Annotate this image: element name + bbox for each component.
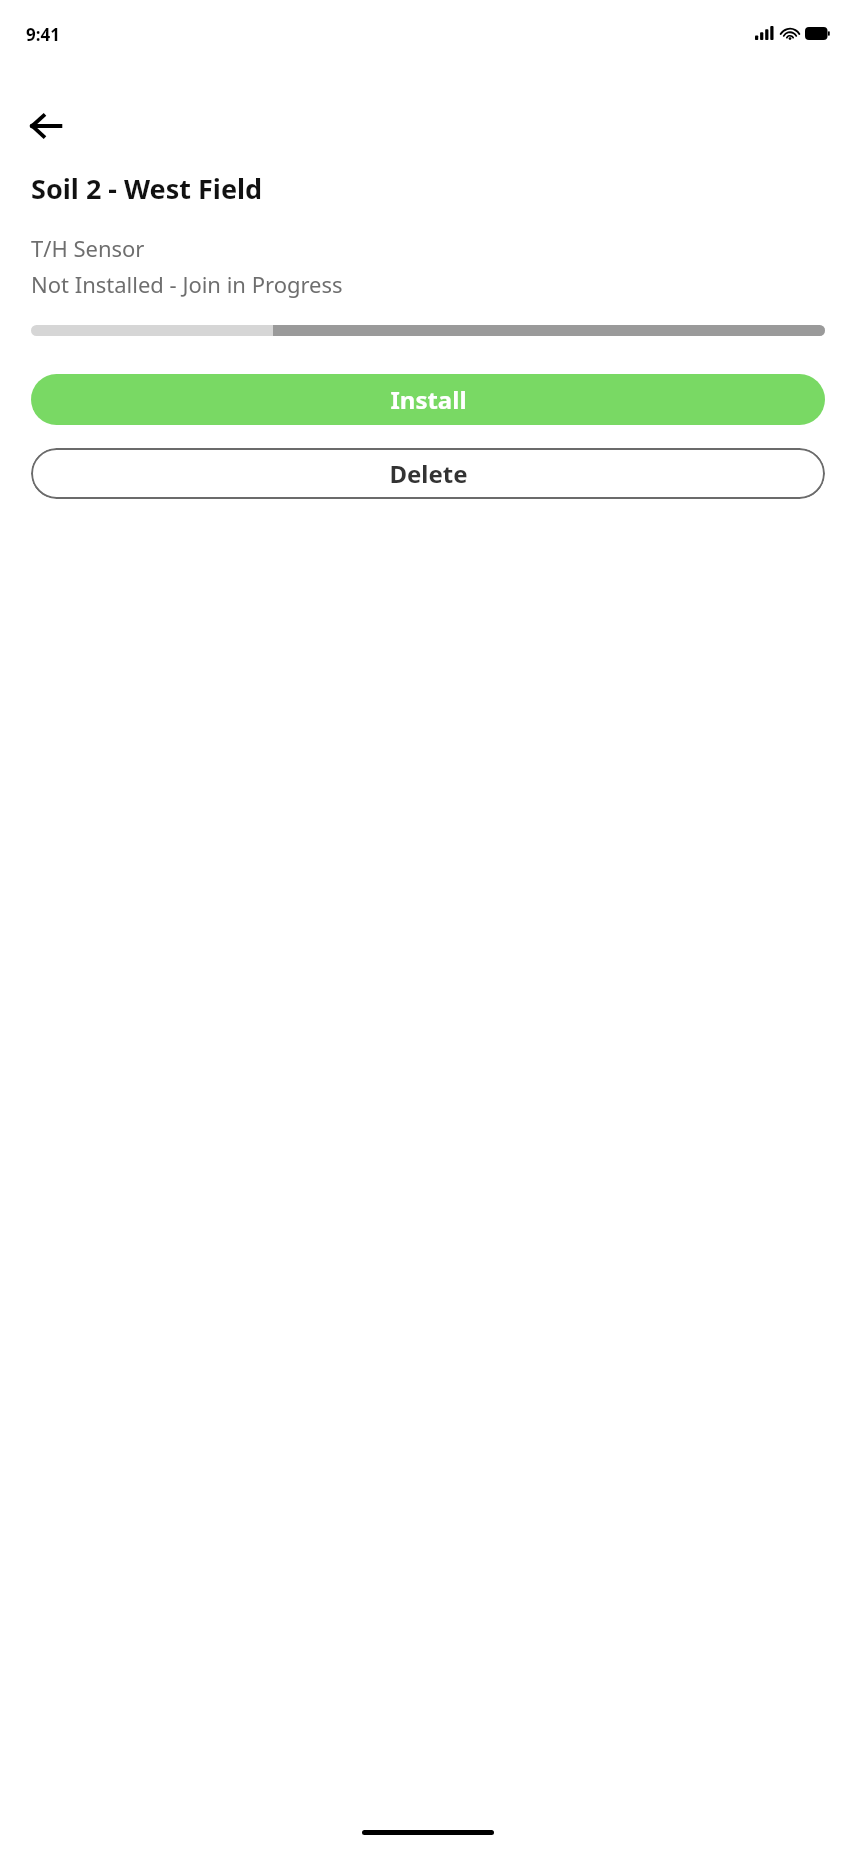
staticText: T/H Sensor bbox=[31, 233, 145, 263]
button[interactable]: Delete bbox=[31, 448, 825, 499]
button[interactable]: Install bbox=[31, 374, 825, 425]
staticText: Install bbox=[390, 383, 467, 416]
staticText: 9:41 bbox=[26, 23, 60, 46]
staticText: Not Installed - Join in Progress bbox=[31, 269, 343, 299]
staticText: Delete bbox=[389, 457, 468, 490]
staticText: Soil 2 - West Field bbox=[31, 170, 263, 207]
button[interactable]: Back bbox=[18, 98, 74, 154]
